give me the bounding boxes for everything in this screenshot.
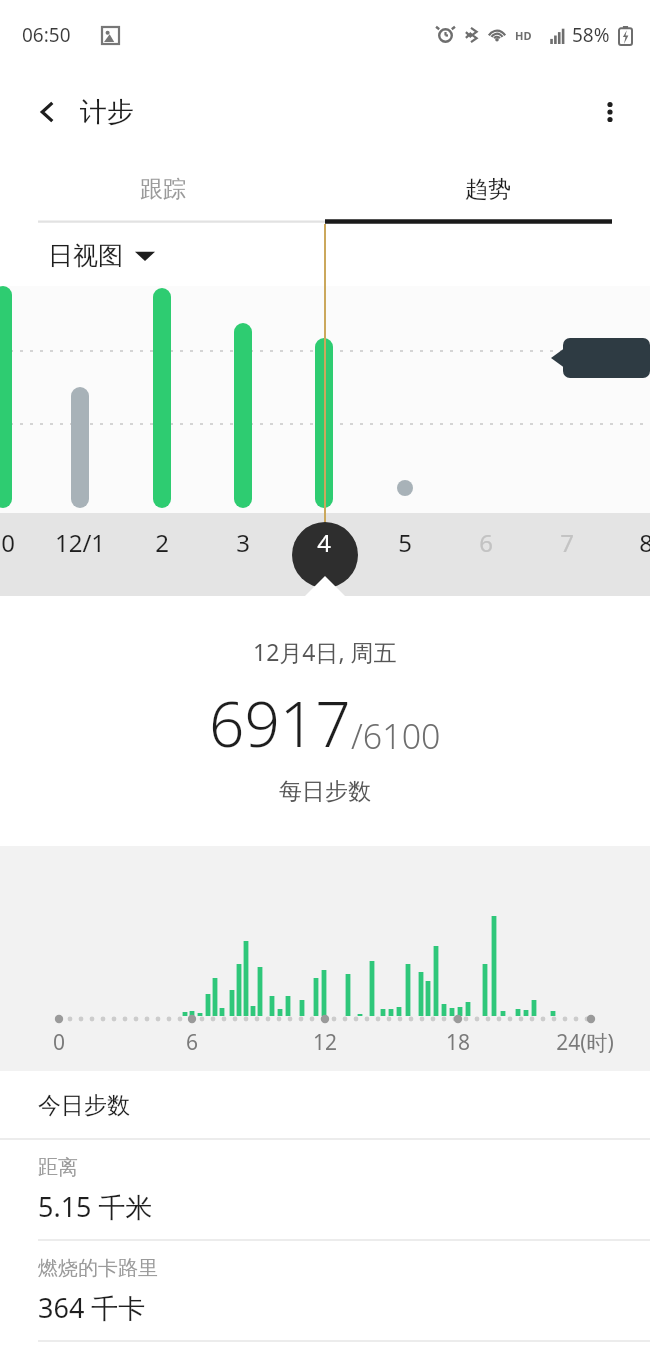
staticText: 8	[616, 526, 650, 559]
staticText: 24(时)	[545, 1028, 625, 1057]
staticText: 6917	[209, 681, 351, 765]
staticText: HD	[515, 28, 532, 43]
staticText: 58%	[572, 22, 610, 48]
button[interactable]: More options	[588, 90, 632, 134]
staticText: 6	[152, 1028, 232, 1057]
staticText: 06:50	[22, 22, 71, 48]
staticText: 6	[456, 526, 516, 559]
staticText: /6100	[351, 713, 441, 759]
staticText: 2	[132, 526, 192, 559]
staticText: 18	[418, 1028, 498, 1057]
staticText: 距离	[38, 1155, 78, 1180]
staticText: 日视图	[48, 240, 123, 271]
button[interactable]: 今日步数	[0, 1071, 650, 1139]
button[interactable]: 趋势	[325, 154, 650, 224]
button[interactable]: 燃烧的卡路里	[0, 1241, 650, 1341]
staticText: 燃烧的卡路里	[38, 1256, 158, 1281]
staticText: 5.15 千米	[38, 1188, 153, 1225]
staticText: 0	[19, 1028, 99, 1057]
staticText: 趋势	[465, 175, 511, 204]
staticText: 12/1	[50, 526, 110, 559]
staticText: 计步	[80, 95, 134, 129]
staticText: 0	[0, 526, 38, 559]
button[interactable]: 距离	[0, 1140, 650, 1240]
staticText: 364 千卡	[38, 1289, 146, 1326]
button[interactable]: Back	[28, 92, 68, 132]
button[interactable]: 跟踪	[0, 154, 325, 224]
staticText: 12	[285, 1028, 365, 1057]
staticText: 3	[213, 526, 273, 559]
staticText: 跟踪	[140, 175, 186, 204]
staticText: 5	[375, 526, 435, 559]
staticText: 每日步数	[279, 777, 371, 806]
staticText: 今日步数	[38, 1091, 130, 1120]
staticText: 12月4日, 周五	[253, 636, 397, 667]
button[interactable]: 日视图	[48, 240, 155, 271]
staticText: 7	[537, 526, 597, 559]
staticText: 4	[294, 526, 354, 559]
